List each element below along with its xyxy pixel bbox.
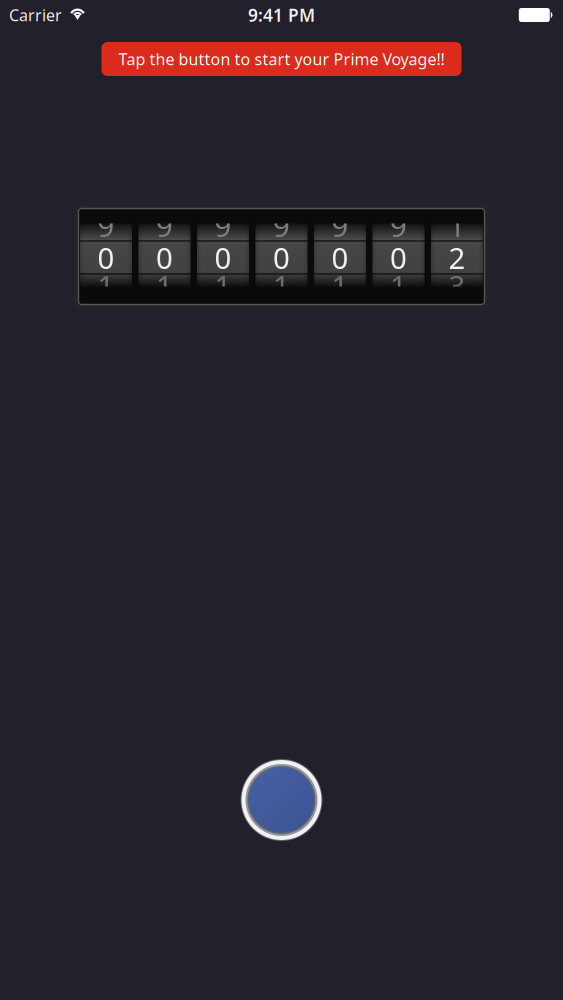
staticText: 1 — [214, 266, 231, 305]
staticText: 0 — [156, 238, 173, 277]
staticText: 0 — [97, 238, 114, 277]
staticText: 0 — [331, 238, 348, 277]
staticText: 0 — [273, 238, 290, 277]
staticText: 1 — [390, 266, 407, 305]
staticText: 9 — [390, 206, 407, 245]
staticText: 0 — [214, 238, 231, 277]
staticText: Tap the button to start your Prime Voyag… — [118, 48, 444, 70]
staticText: 9 — [214, 206, 231, 245]
staticText: 1 — [97, 266, 114, 305]
staticText: 1 — [448, 206, 465, 245]
button[interactable]: Start Prime Voyage — [238, 757, 324, 843]
staticText: 2 — [448, 238, 465, 277]
staticText: 3 — [448, 266, 465, 305]
staticText: 1 — [331, 266, 348, 305]
staticText: 0 — [390, 238, 407, 277]
staticText: 1 — [156, 266, 173, 305]
button[interactable]: Tap the button to start your Prime Voyag… — [101, 42, 461, 76]
staticText: 9 — [97, 206, 114, 245]
staticText: 9 — [156, 206, 173, 245]
staticText: 9 — [331, 206, 348, 245]
staticText: 1 — [273, 266, 290, 305]
staticText: Carrier — [9, 4, 62, 26]
staticText: 9 — [273, 206, 290, 245]
staticText: 9:41 PM — [248, 3, 315, 26]
